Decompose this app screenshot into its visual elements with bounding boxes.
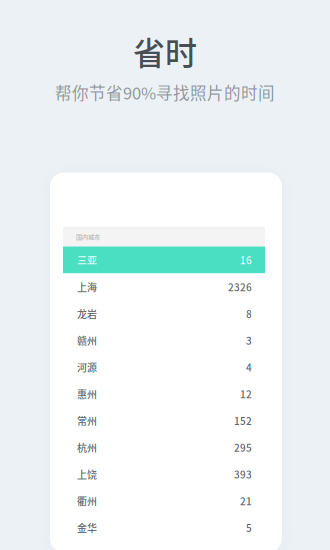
button[interactable]: 三亚 (63, 246, 265, 273)
staticText: 惠州 (77, 387, 97, 401)
staticText: 龙岩 (77, 306, 97, 321)
staticText: 省时 (133, 28, 197, 74)
staticText: 4 (246, 360, 252, 374)
button[interactable]: 河源 (63, 354, 265, 381)
staticText: 5 (246, 520, 252, 535)
staticText: 国内城市 (76, 232, 100, 241)
button[interactable]: 惠州 (63, 380, 265, 407)
staticText: 赣州 (77, 333, 97, 348)
staticText: 河源 (77, 360, 97, 374)
staticText: 衢州 (77, 494, 97, 508)
staticText: 3 (246, 333, 252, 348)
staticText: 12 (240, 387, 252, 401)
button[interactable]: 上海 (63, 273, 265, 300)
button[interactable]: 上饶 (63, 461, 265, 488)
staticText: 295 (234, 440, 252, 455)
staticText: 金华 (77, 520, 97, 535)
staticText: 上海 (77, 280, 97, 294)
staticText: 8 (246, 306, 252, 321)
button[interactable]: 杭州 (63, 434, 265, 461)
staticText: 393 (234, 467, 252, 481)
staticText: 21 (240, 494, 252, 508)
staticText: 三亚 (77, 253, 97, 267)
button[interactable]: 龙岩 (63, 300, 265, 327)
button[interactable]: 衢州 (63, 487, 265, 514)
staticText: 上饶 (77, 467, 97, 481)
staticText: 2326 (228, 280, 252, 294)
staticText: 帮你节省90%寻找照片的时间 (55, 80, 275, 104)
staticText: 16 (240, 253, 252, 267)
button[interactable]: 金华 (63, 514, 265, 541)
staticText: 152 (234, 413, 252, 428)
button[interactable]: 赣州 (63, 327, 265, 354)
staticText: 杭州 (77, 440, 97, 455)
button[interactable]: 常州 (63, 407, 265, 434)
staticText: 常州 (77, 413, 97, 428)
